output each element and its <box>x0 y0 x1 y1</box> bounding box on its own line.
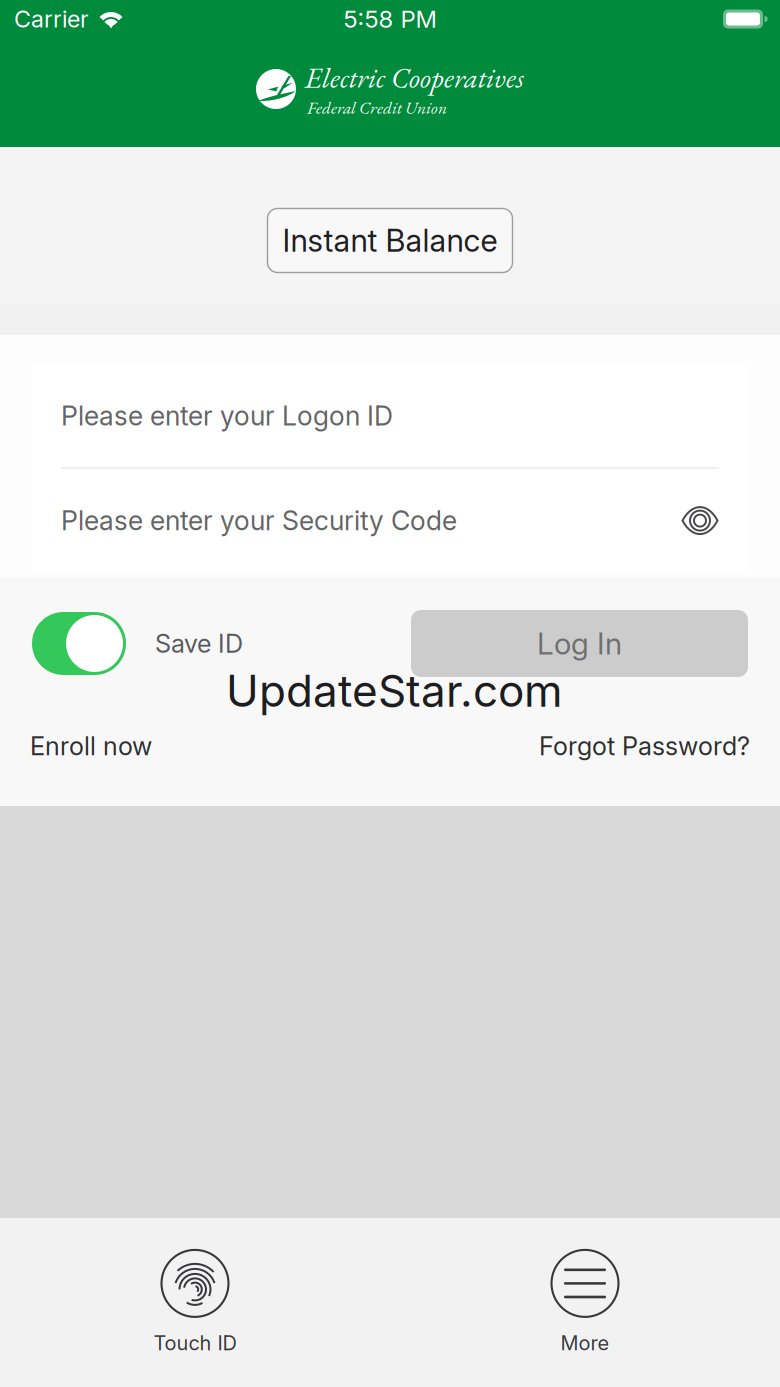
button[interactable]: Save ID <box>32 612 243 675</box>
staticText: 5:58 PM <box>343 4 436 33</box>
staticText: UpdateStar.com <box>226 664 563 717</box>
staticText: Instant Balance <box>282 222 497 259</box>
staticText: More <box>560 1331 609 1355</box>
button[interactable]: Log In <box>411 610 748 677</box>
staticText: Electric Cooperatives <box>305 59 524 96</box>
staticText: Touch ID <box>153 1331 236 1355</box>
button[interactable]: Instant Balance <box>267 208 512 272</box>
button[interactable]: More <box>390 1218 780 1387</box>
staticText: Carrier <box>14 5 89 33</box>
staticText: Enroll now <box>30 731 152 761</box>
staticText: Save ID <box>155 628 243 659</box>
staticText: Log In <box>537 625 622 662</box>
staticText: Federal Credit Union <box>307 96 447 119</box>
staticText: Please enter your Logon ID <box>61 400 393 432</box>
button[interactable]: Touch ID <box>0 1218 390 1387</box>
button[interactable]: Forgot Password? <box>539 731 750 761</box>
staticText: Forgot Password? <box>539 731 750 761</box>
button[interactable]: Enroll now <box>30 731 152 761</box>
staticText: Please enter your Security Code <box>61 504 457 537</box>
